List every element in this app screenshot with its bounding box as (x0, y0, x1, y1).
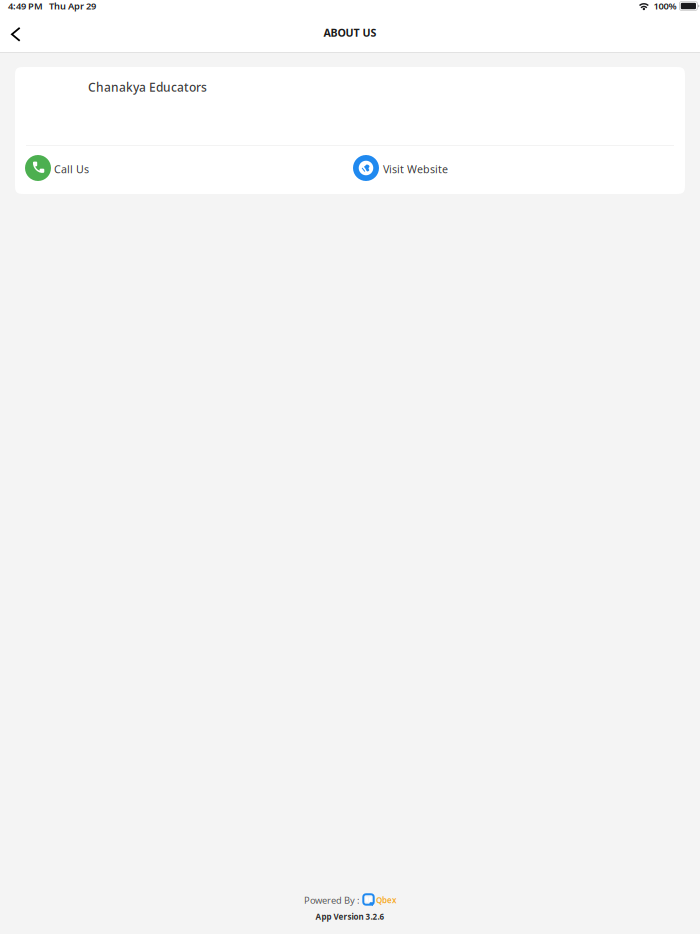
staticText: ABOUT US (323, 25, 376, 40)
button[interactable]: Visit Website (350, 146, 685, 194)
button[interactable]: Back (0, 17, 30, 51)
staticText: 100% (653, 0, 676, 12)
staticText: Call Us (54, 162, 89, 176)
staticText: Visit Website (383, 162, 448, 176)
staticText: App Version 3.2.6 (315, 911, 384, 922)
staticText: Powered By : (304, 894, 360, 906)
staticText: Thu Apr 29 (49, 0, 96, 12)
button[interactable]: Call Us (15, 146, 350, 194)
staticText: Chanakya Educators (88, 79, 207, 95)
staticText: Qbex (376, 895, 396, 905)
staticText: 4:49 PM (8, 0, 43, 12)
